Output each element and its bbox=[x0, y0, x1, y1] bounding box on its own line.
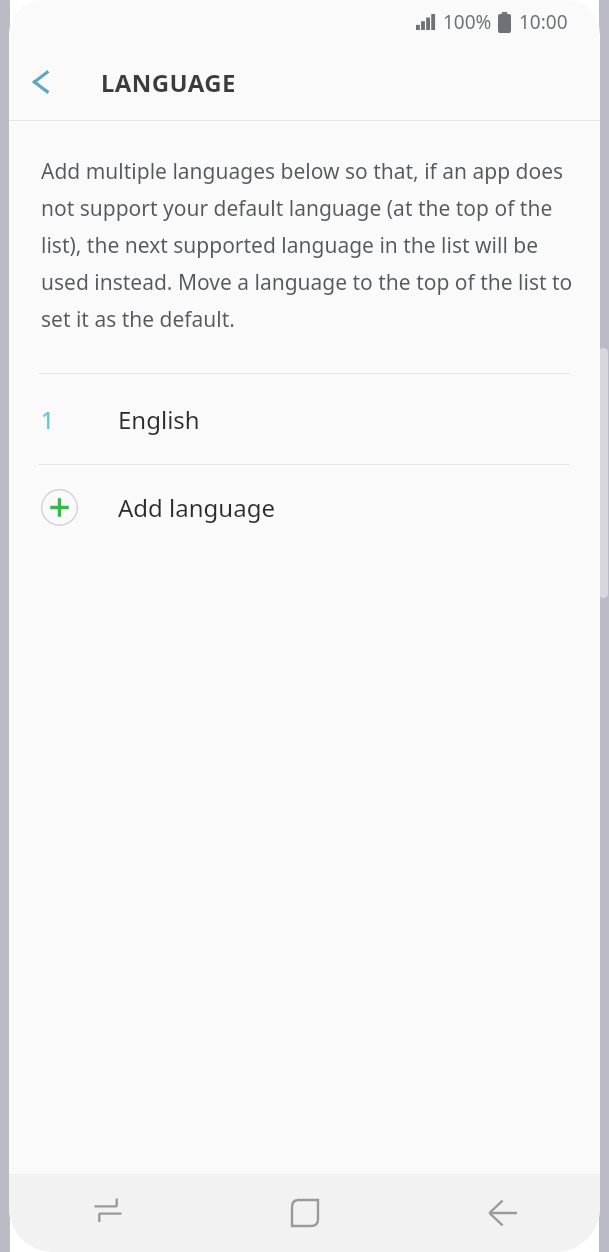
button[interactable]: Add language bbox=[9, 465, 600, 549]
staticText: 10:00 bbox=[519, 9, 568, 35]
button[interactable]: Back bbox=[403, 1174, 600, 1252]
button[interactable]: 1 bbox=[9, 374, 600, 464]
staticText: Add language bbox=[118, 491, 275, 524]
button[interactable]: Navigate up bbox=[9, 50, 73, 114]
staticText: 1 bbox=[41, 404, 55, 435]
staticText: 100% bbox=[443, 9, 492, 35]
staticText: Add multiple languages below so that, if… bbox=[41, 157, 574, 333]
staticText: LANGUAGE bbox=[101, 66, 236, 99]
button[interactable]: Recent apps bbox=[9, 1174, 206, 1252]
staticText: English bbox=[118, 403, 200, 436]
button[interactable]: Home bbox=[206, 1174, 403, 1252]
